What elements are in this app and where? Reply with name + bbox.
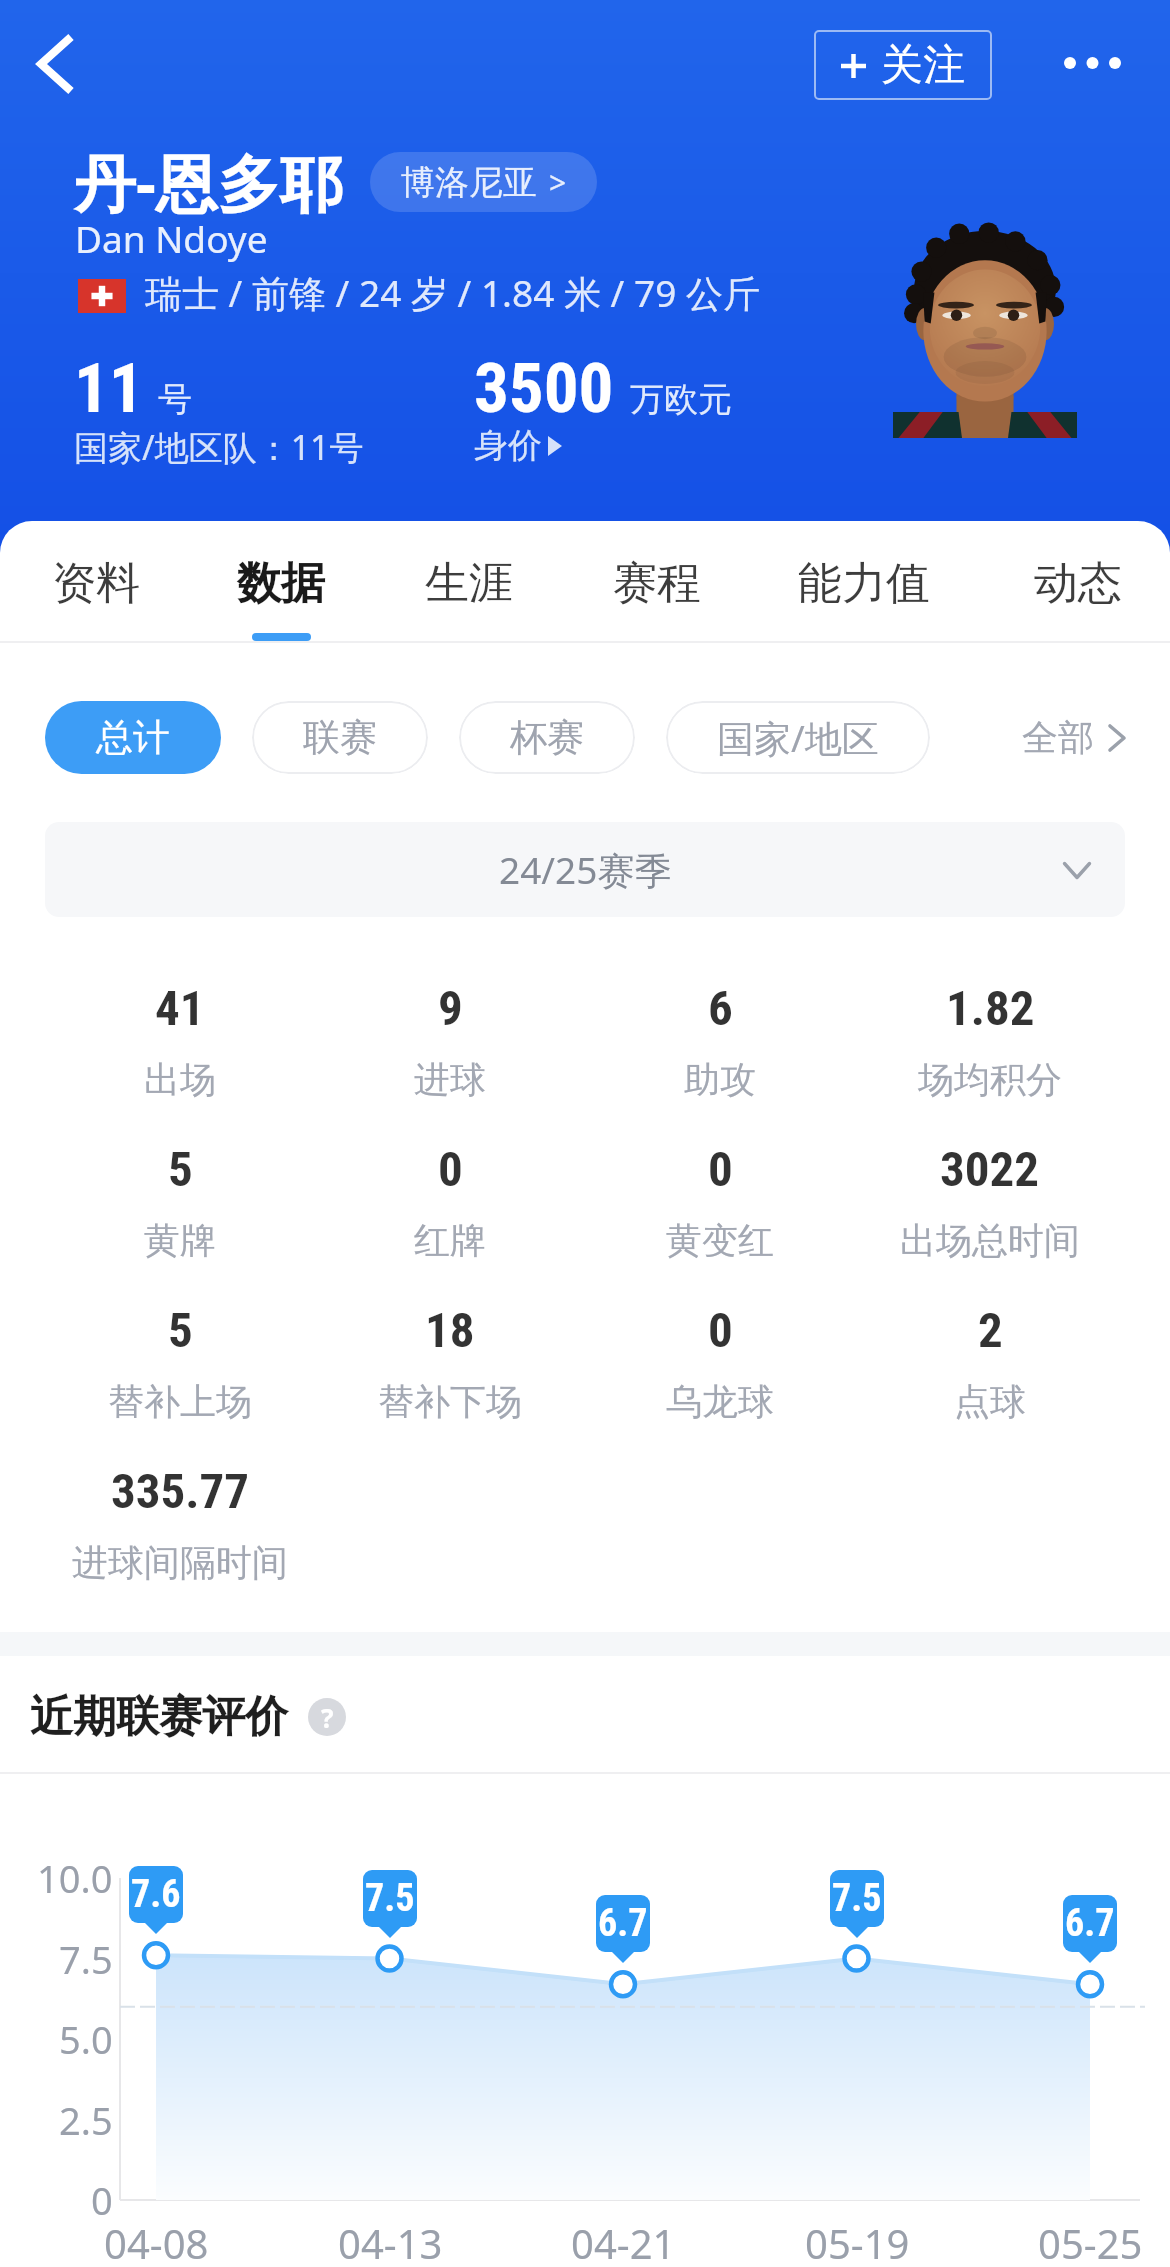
staticText: 动态 <box>1034 556 1122 611</box>
staticText: 瑞士 / 前锋 / 24 岁 / 1.84 米 / 79 公斤 <box>145 267 760 318</box>
staticText: 5 <box>168 1141 193 1198</box>
staticText: 0 <box>708 1302 733 1359</box>
button[interactable]: 关注 <box>814 30 992 100</box>
staticText: > <box>549 162 567 203</box>
button[interactable]: 总计 <box>45 701 221 774</box>
button[interactable]: 动态 <box>991 521 1165 639</box>
button[interactable]: 国家/地区 <box>666 701 930 774</box>
staticText: 黄牌 <box>144 1218 216 1263</box>
staticText: 联赛 <box>303 714 377 761</box>
button[interactable]: Back <box>8 16 104 112</box>
staticText: 7.6 <box>131 1872 181 1917</box>
staticText: 红牌 <box>414 1218 486 1263</box>
staticText: 黄变红 <box>666 1218 774 1263</box>
staticText: 助攻 <box>684 1057 756 1102</box>
staticText: 博洛尼亚 <box>401 161 537 204</box>
staticText: 替补上场 <box>108 1379 252 1424</box>
staticText: 11 <box>74 348 144 429</box>
staticText: 0 <box>708 1141 733 1198</box>
staticText: 赛程 <box>613 556 701 611</box>
staticText: 总计 <box>96 714 170 761</box>
staticText: 近期联赛评价 <box>30 1690 288 1744</box>
button[interactable]: More options <box>1044 18 1140 108</box>
staticText: 关注 <box>881 39 965 92</box>
staticText: 场均积分 <box>918 1057 1062 1102</box>
button[interactable]: 数据 <box>193 521 369 639</box>
staticText: 资料 <box>52 556 140 611</box>
button[interactable]: 联赛 <box>252 701 428 774</box>
staticText: 进球 <box>414 1057 486 1102</box>
staticText: 身价 <box>474 424 542 467</box>
staticText: 点球 <box>954 1379 1026 1424</box>
staticText: 2.5 <box>59 2094 113 2146</box>
staticText: 替补下场 <box>378 1379 522 1424</box>
staticText: 7.5 <box>365 1876 415 1921</box>
staticText: 0 <box>91 2174 113 2226</box>
staticText: 7.5 <box>832 1876 882 1921</box>
staticText: Dan Ndoye <box>75 213 268 263</box>
staticText: 24/25赛季 <box>499 844 672 895</box>
staticText: 号 <box>158 378 192 421</box>
staticText: 41 <box>155 980 205 1037</box>
staticText: 18 <box>425 1302 475 1359</box>
staticText: 04-08 <box>104 2216 209 2267</box>
button[interactable]: 生涯 <box>384 521 554 639</box>
button[interactable]: 全部 <box>1022 715 1126 760</box>
staticText: 杯赛 <box>510 714 584 761</box>
staticText: 9 <box>438 980 463 1037</box>
staticText: 国家/地区队：11号 <box>74 424 364 470</box>
staticText: 万欧元 <box>630 378 732 421</box>
button[interactable]: 赛程 <box>570 521 744 639</box>
staticText: 生涯 <box>425 556 513 611</box>
staticText: 2 <box>978 1302 1003 1359</box>
staticText: 进球间隔时间 <box>72 1540 288 1585</box>
button[interactable]: Help <box>308 1698 346 1736</box>
staticText: 3022 <box>940 1141 1040 1198</box>
button[interactable]: 资料 <box>8 521 184 639</box>
staticText: 0 <box>438 1141 463 1198</box>
staticText: 丹-恩多耶 <box>74 140 342 225</box>
staticText: 全部 <box>1022 715 1094 760</box>
staticText: 国家/地区 <box>717 712 879 763</box>
staticText: 335.77 <box>111 1463 250 1520</box>
button[interactable]: 能力值 <box>758 521 970 639</box>
staticText: 04-13 <box>338 2216 443 2267</box>
staticText: 6 <box>708 980 733 1037</box>
staticText: 乌龙球 <box>666 1379 774 1424</box>
staticText: 05-19 <box>805 2216 910 2267</box>
staticText: 05-25 <box>1038 2216 1143 2267</box>
staticText: 出场总时间 <box>900 1218 1080 1263</box>
staticText: 04-21 <box>571 2216 676 2267</box>
staticText: 3500 <box>474 348 614 429</box>
staticText: 能力值 <box>798 556 930 611</box>
staticText: 5.0 <box>59 2013 113 2065</box>
staticText: ? <box>321 1700 334 1735</box>
button[interactable]: 博洛尼亚 <box>370 152 597 212</box>
staticText: 6.7 <box>1065 1901 1115 1946</box>
staticText: 数据 <box>237 556 325 611</box>
button[interactable]: 杯赛 <box>459 701 635 774</box>
staticText: 出场 <box>144 1057 216 1102</box>
staticText: 5 <box>168 1302 193 1359</box>
button[interactable]: 24/25赛季 <box>45 822 1125 917</box>
staticText: 7.5 <box>59 1933 113 1985</box>
staticText: 6.7 <box>598 1901 648 1946</box>
staticText: 1.82 <box>946 980 1035 1037</box>
staticText: 10.0 <box>37 1852 113 1904</box>
